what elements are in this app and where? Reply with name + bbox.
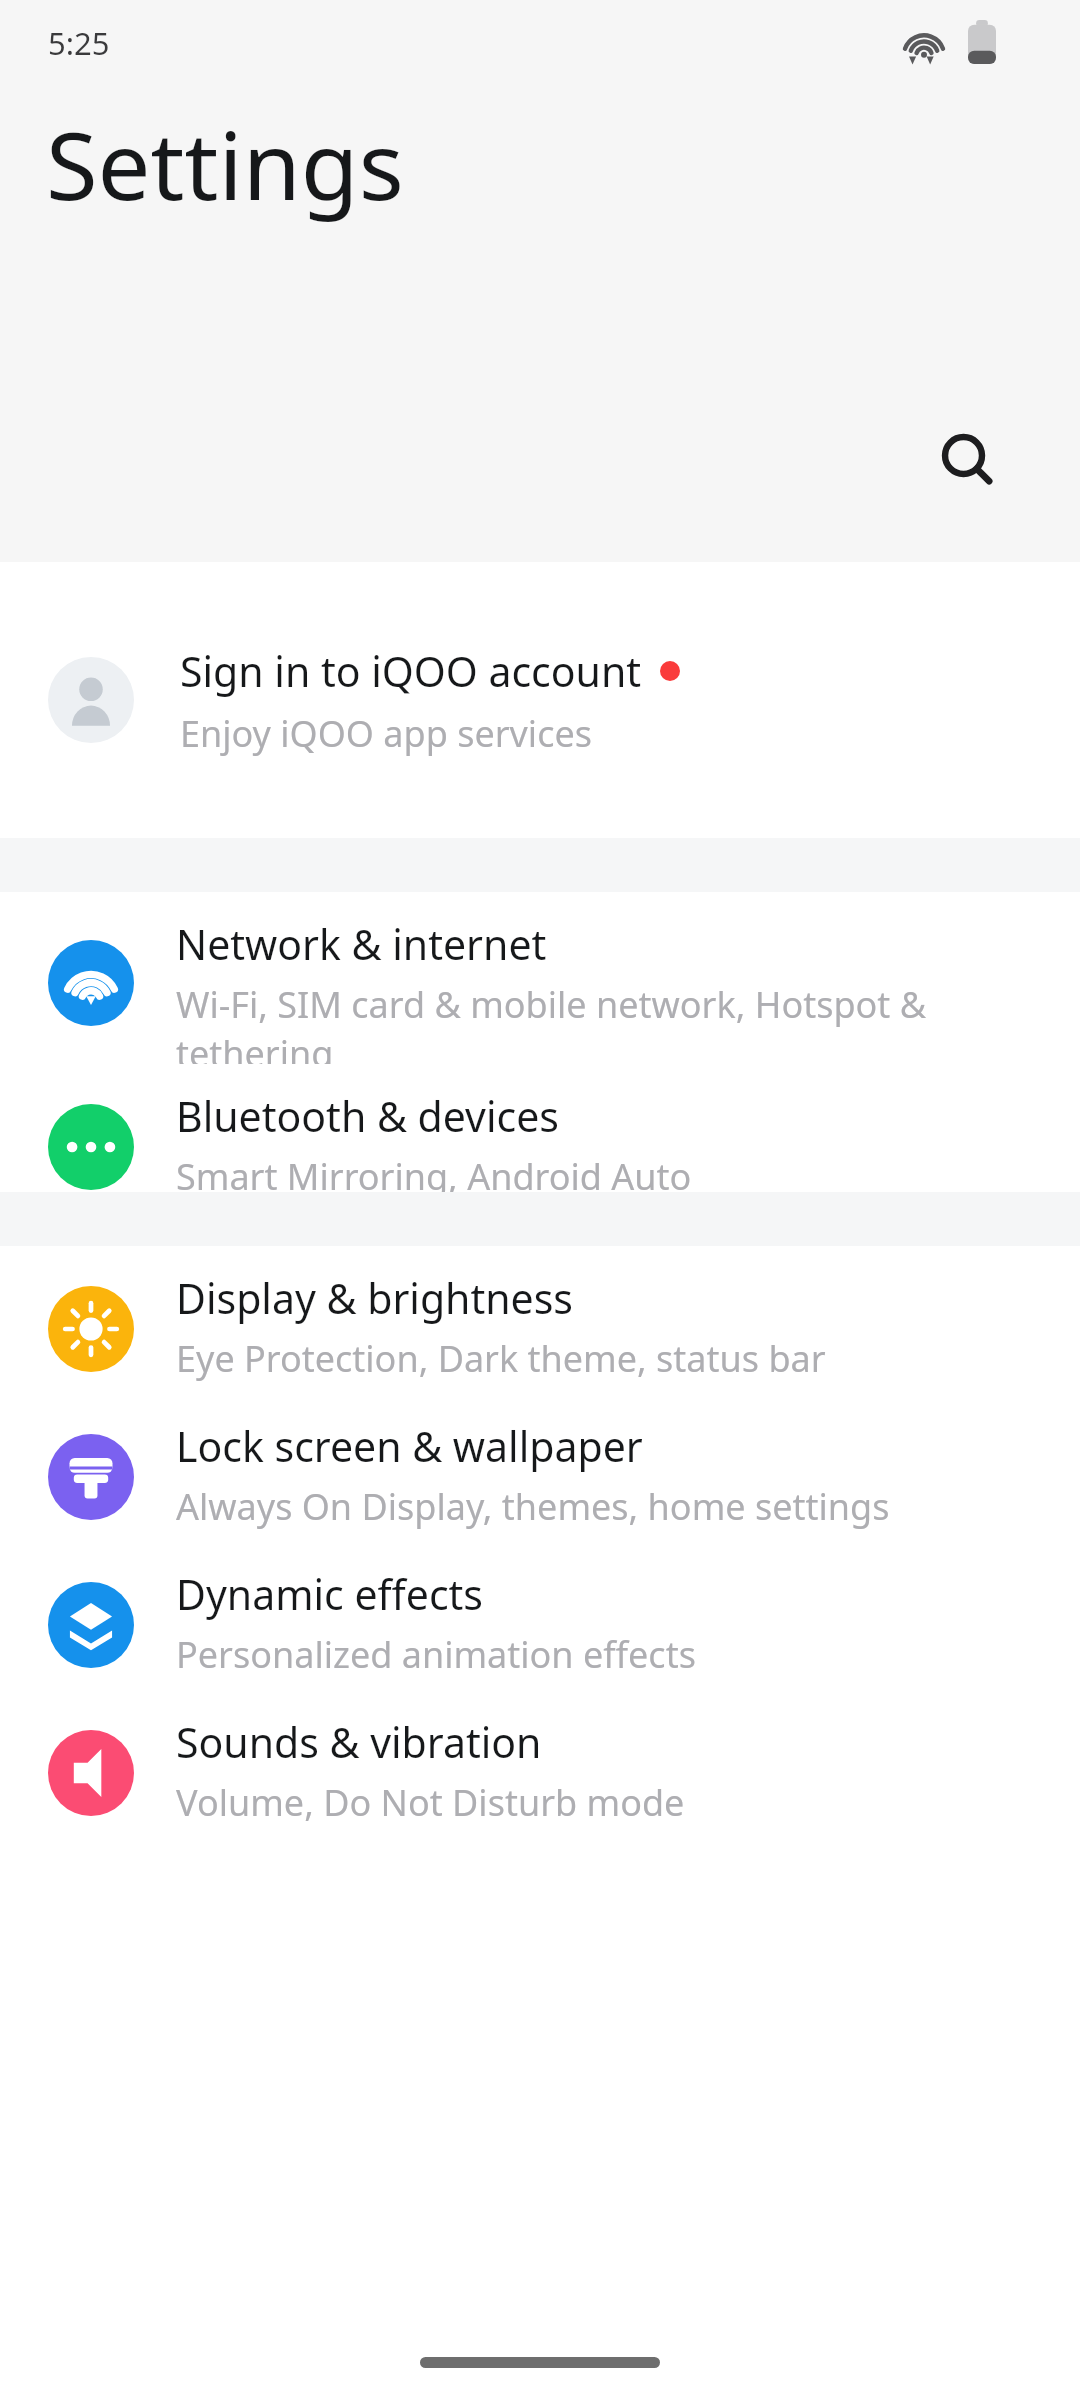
staticText: 5:25 [48, 22, 110, 64]
staticText: Network & internet [176, 916, 547, 972]
staticText: Sign in to iQOO account [180, 643, 642, 699]
button[interactable]: Search [908, 400, 1028, 520]
staticText: Bluetooth & devices [176, 1088, 559, 1144]
staticText: Display & brightness [176, 1270, 574, 1326]
staticText: Sounds & vibration [176, 1714, 542, 1770]
staticText: Lock screen & wallpaper [176, 1418, 643, 1474]
staticText: Dynamic effects [176, 1566, 484, 1622]
staticText: Always On Display, themes, home settings [176, 1482, 890, 1531]
staticText: Settings [46, 100, 404, 228]
button[interactable]: Display & brightness [0, 1246, 1080, 1394]
button[interactable]: Dynamic effects [0, 1542, 1080, 1690]
staticText: Enjoy iQOO app services [180, 709, 592, 758]
staticText: Volume, Do Not Disturb mode [176, 1778, 685, 1827]
staticText: Personalized animation effects [176, 1630, 696, 1679]
staticText: Smart Mirroring, Android Auto [176, 1152, 692, 1192]
button[interactable]: Sign in to iQOO account [0, 562, 1080, 838]
button[interactable]: Network & internet [0, 892, 1080, 1064]
staticText: Eye Protection, Dark theme, status bar [176, 1334, 826, 1383]
button[interactable]: Sounds & vibration [0, 1690, 1080, 1838]
staticText: Wi-Fi, SIM card & mobile network, Hotspo… [176, 980, 1040, 1064]
button[interactable]: Lock screen & wallpaper [0, 1394, 1080, 1542]
button[interactable]: Bluetooth & devices [0, 1064, 1080, 1192]
